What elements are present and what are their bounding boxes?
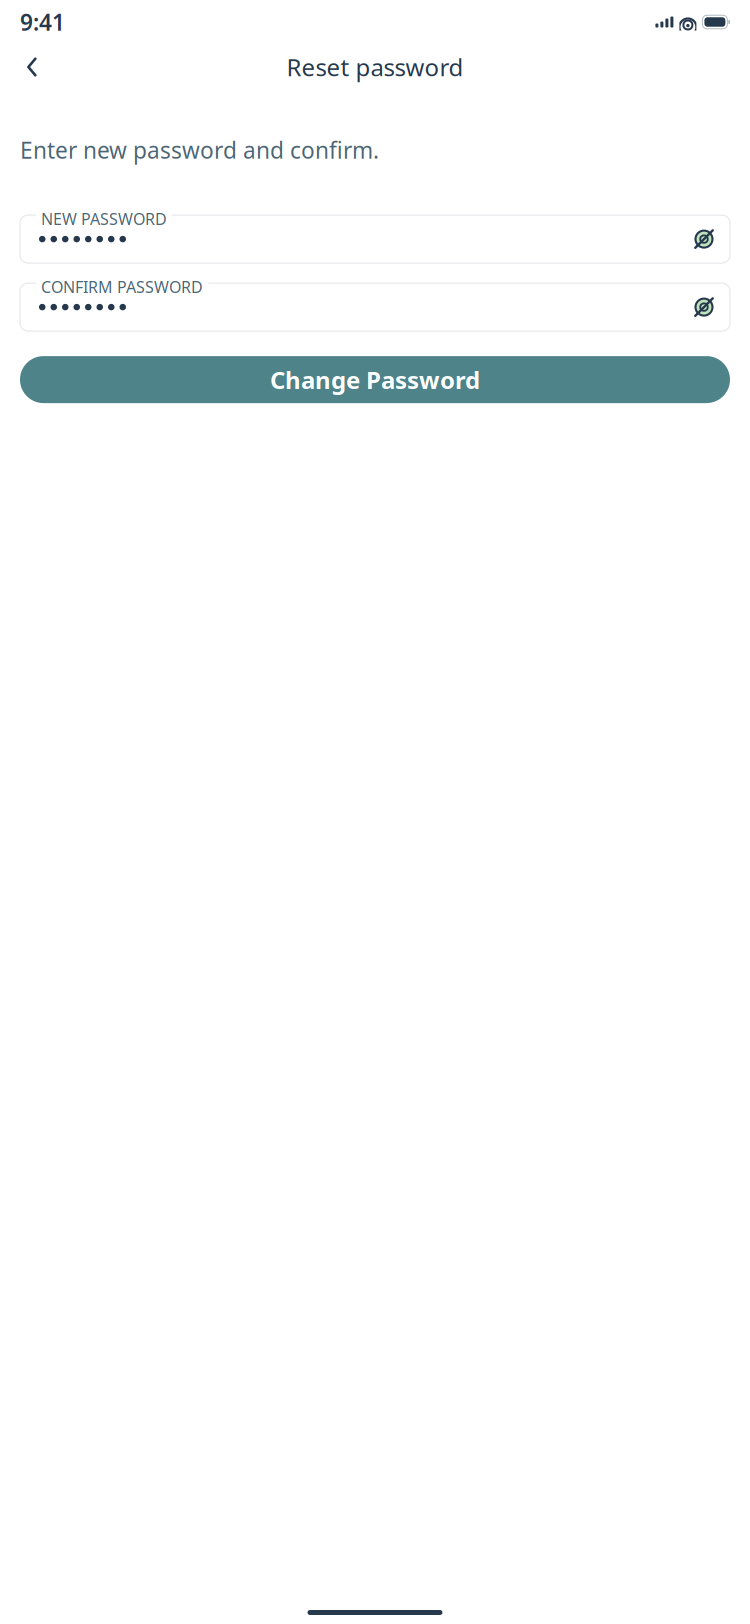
staticText: CONFIRM PASSWORD	[41, 276, 203, 297]
button[interactable]: Change Password	[20, 356, 730, 403]
button[interactable]: Show new password	[684, 219, 724, 259]
staticText: 9:41	[20, 7, 65, 37]
staticText: Change Password	[270, 364, 480, 396]
button[interactable]: Back	[10, 45, 54, 89]
staticText: Enter new password and confirm.	[20, 135, 379, 165]
staticText: NEW PASSWORD	[41, 208, 167, 229]
button[interactable]: Show confirm password	[684, 287, 724, 327]
staticText: Reset password	[286, 51, 463, 83]
